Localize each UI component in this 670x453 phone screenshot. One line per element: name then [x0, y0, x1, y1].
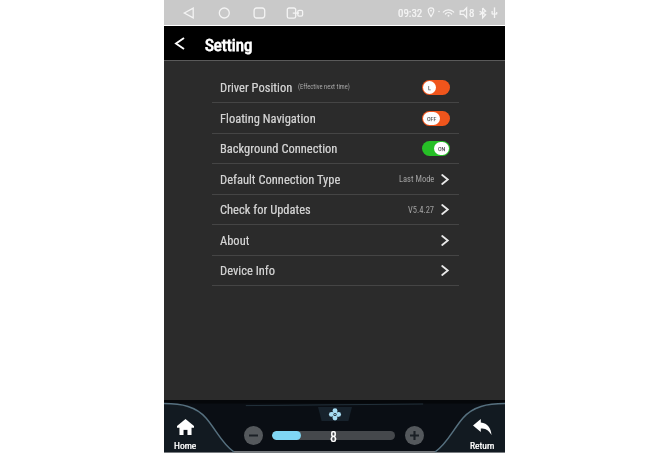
staticText: Return: [470, 440, 495, 451]
staticText: 8: [469, 7, 475, 20]
button[interactable]: Return: [460, 413, 505, 451]
staticText: (Effective next time): [298, 83, 350, 91]
staticText: Setting: [205, 35, 253, 55]
staticText: Default Connection Type: [220, 172, 341, 187]
button[interactable]: Driver Position: [212, 71, 459, 103]
staticText: 8: [272, 429, 395, 445]
button[interactable]: Fan: [318, 407, 352, 421]
staticText: V5.4.27: [408, 205, 435, 215]
button[interactable]: Default Connection Type: [212, 163, 459, 195]
button[interactable]: OFF toggle: [422, 111, 450, 126]
staticText: ON: [438, 145, 446, 152]
button[interactable]: L toggle: [422, 80, 450, 95]
staticText: Home: [174, 440, 197, 451]
button[interactable]: Check for Updates: [212, 194, 459, 225]
button[interactable]: Decrease fan speed: [244, 426, 263, 445]
staticText: Floating Navigation: [220, 111, 316, 126]
staticText: About: [220, 233, 250, 248]
staticText: Background Connection: [220, 141, 338, 156]
staticText: Driver Position: [220, 80, 293, 95]
staticText: Last Mode: [399, 174, 435, 184]
staticText: L: [428, 84, 431, 91]
button[interactable]: About: [212, 224, 459, 256]
staticText: Check for Updates: [220, 202, 311, 217]
button[interactable]: Device Info: [212, 255, 459, 286]
staticText: OFF: [427, 115, 437, 122]
staticText: 09:32: [398, 7, 423, 20]
button[interactable]: ON toggle: [422, 141, 450, 156]
button[interactable]: Background Connection: [212, 133, 459, 164]
button[interactable]: Home: [164, 413, 206, 451]
button[interactable]: Increase fan speed: [405, 426, 424, 445]
staticText: Device Info: [220, 263, 276, 278]
button[interactable]: Floating Navigation: [212, 102, 459, 134]
button[interactable]: Back: [164, 26, 196, 61]
